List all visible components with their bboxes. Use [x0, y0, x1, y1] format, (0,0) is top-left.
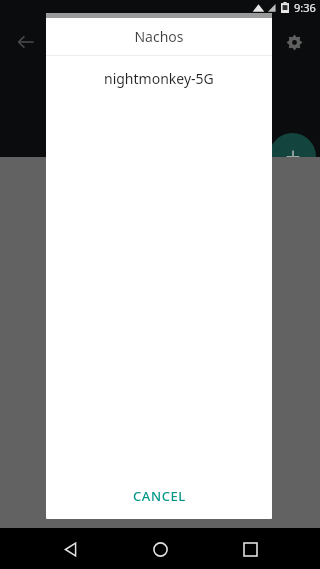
staticText: CANCEL	[133, 487, 186, 505]
button[interactable]: Add network	[269, 133, 316, 180]
button[interactable]: nightmonkey-5G	[46, 56, 272, 100]
button[interactable]: Recent apps	[230, 529, 270, 569]
button[interactable]: Back	[50, 529, 90, 569]
staticText: Nachos	[134, 27, 184, 46]
staticText: 9:36	[294, 0, 316, 15]
button[interactable]: Home	[140, 529, 180, 569]
button[interactable]: CANCEL	[123, 479, 196, 513]
button[interactable]: Back	[4, 20, 48, 64]
button[interactable]: Settings	[272, 20, 316, 64]
staticText: nightmonkey-5G	[104, 69, 214, 88]
